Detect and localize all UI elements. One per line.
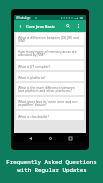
button[interactable]: What is JIT compiler? [16,61,84,70]
staticText: What is platform? [18,75,46,79]
staticText: What is the main difference between Java… [18,85,79,93]
button[interactable]: Search [62,20,74,32]
button[interactable]: What is classloader? [16,111,84,120]
staticText: What gives Java its 'write once and run … [18,99,79,107]
button[interactable]: How many types of memory areas are alloc… [16,47,84,59]
staticText: Frequently Asked Questions [6,158,97,166]
button[interactable]: What is the main difference between Java… [16,83,84,95]
staticText: What is classloader? [18,114,50,118]
button[interactable]: Back [14,20,26,32]
button[interactable]: Home [46,134,54,142]
button[interactable]: What is platform? [16,72,84,81]
button[interactable]: What is difference between JDK,JRE and J… [16,33,84,45]
button[interactable]: More options [74,20,82,32]
button[interactable]: Recents [66,134,74,142]
staticText: What is difference between JDK,JRE and J… [18,35,79,43]
staticText: How many types of memory areas are alloc… [18,49,79,57]
staticText: WhatsApp [16,16,31,20]
staticText: What is JIT compiler? [18,64,51,68]
button[interactable]: What gives Java its 'write once and run … [16,97,84,109]
staticText: Core Java Basic [26,24,55,29]
staticText: with Regular Updates [17,166,87,174]
button[interactable]: Back [26,134,34,142]
